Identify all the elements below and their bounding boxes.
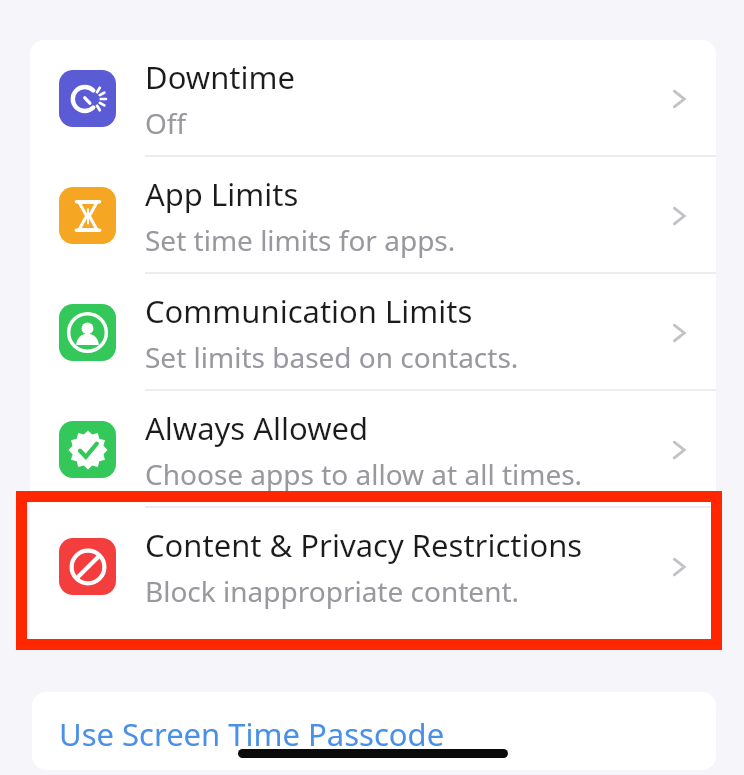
staticText: App Limits — [145, 173, 299, 215]
staticText: Set time limits for apps. — [145, 221, 456, 259]
staticText: Content & Privacy Restrictions — [145, 524, 583, 566]
button[interactable]: Use Screen Time Passcode — [32, 692, 716, 770]
staticText: Block inappropriate content. — [145, 572, 520, 610]
staticText: Always Allowed — [145, 407, 369, 449]
other: Open — [666, 437, 692, 463]
staticText: Downtime — [145, 56, 295, 98]
button[interactable]: App Limits — [30, 157, 716, 274]
other: Open — [666, 320, 692, 346]
staticText: Choose apps to allow at all times. — [145, 455, 583, 493]
button[interactable]: Always Allowed — [30, 391, 716, 508]
other: Open — [666, 203, 692, 229]
staticText: Use Screen Time Passcode — [59, 713, 445, 755]
button[interactable]: Communication Limits — [30, 274, 716, 391]
staticText: Off — [145, 104, 187, 142]
button[interactable]: Downtime — [30, 40, 716, 157]
staticText: Communication Limits — [145, 290, 473, 332]
staticText: Set limits based on contacts. — [145, 338, 519, 376]
other: Open — [666, 554, 692, 580]
button[interactable]: Content & Privacy Restrictions — [30, 508, 716, 625]
other: Open — [666, 86, 692, 112]
